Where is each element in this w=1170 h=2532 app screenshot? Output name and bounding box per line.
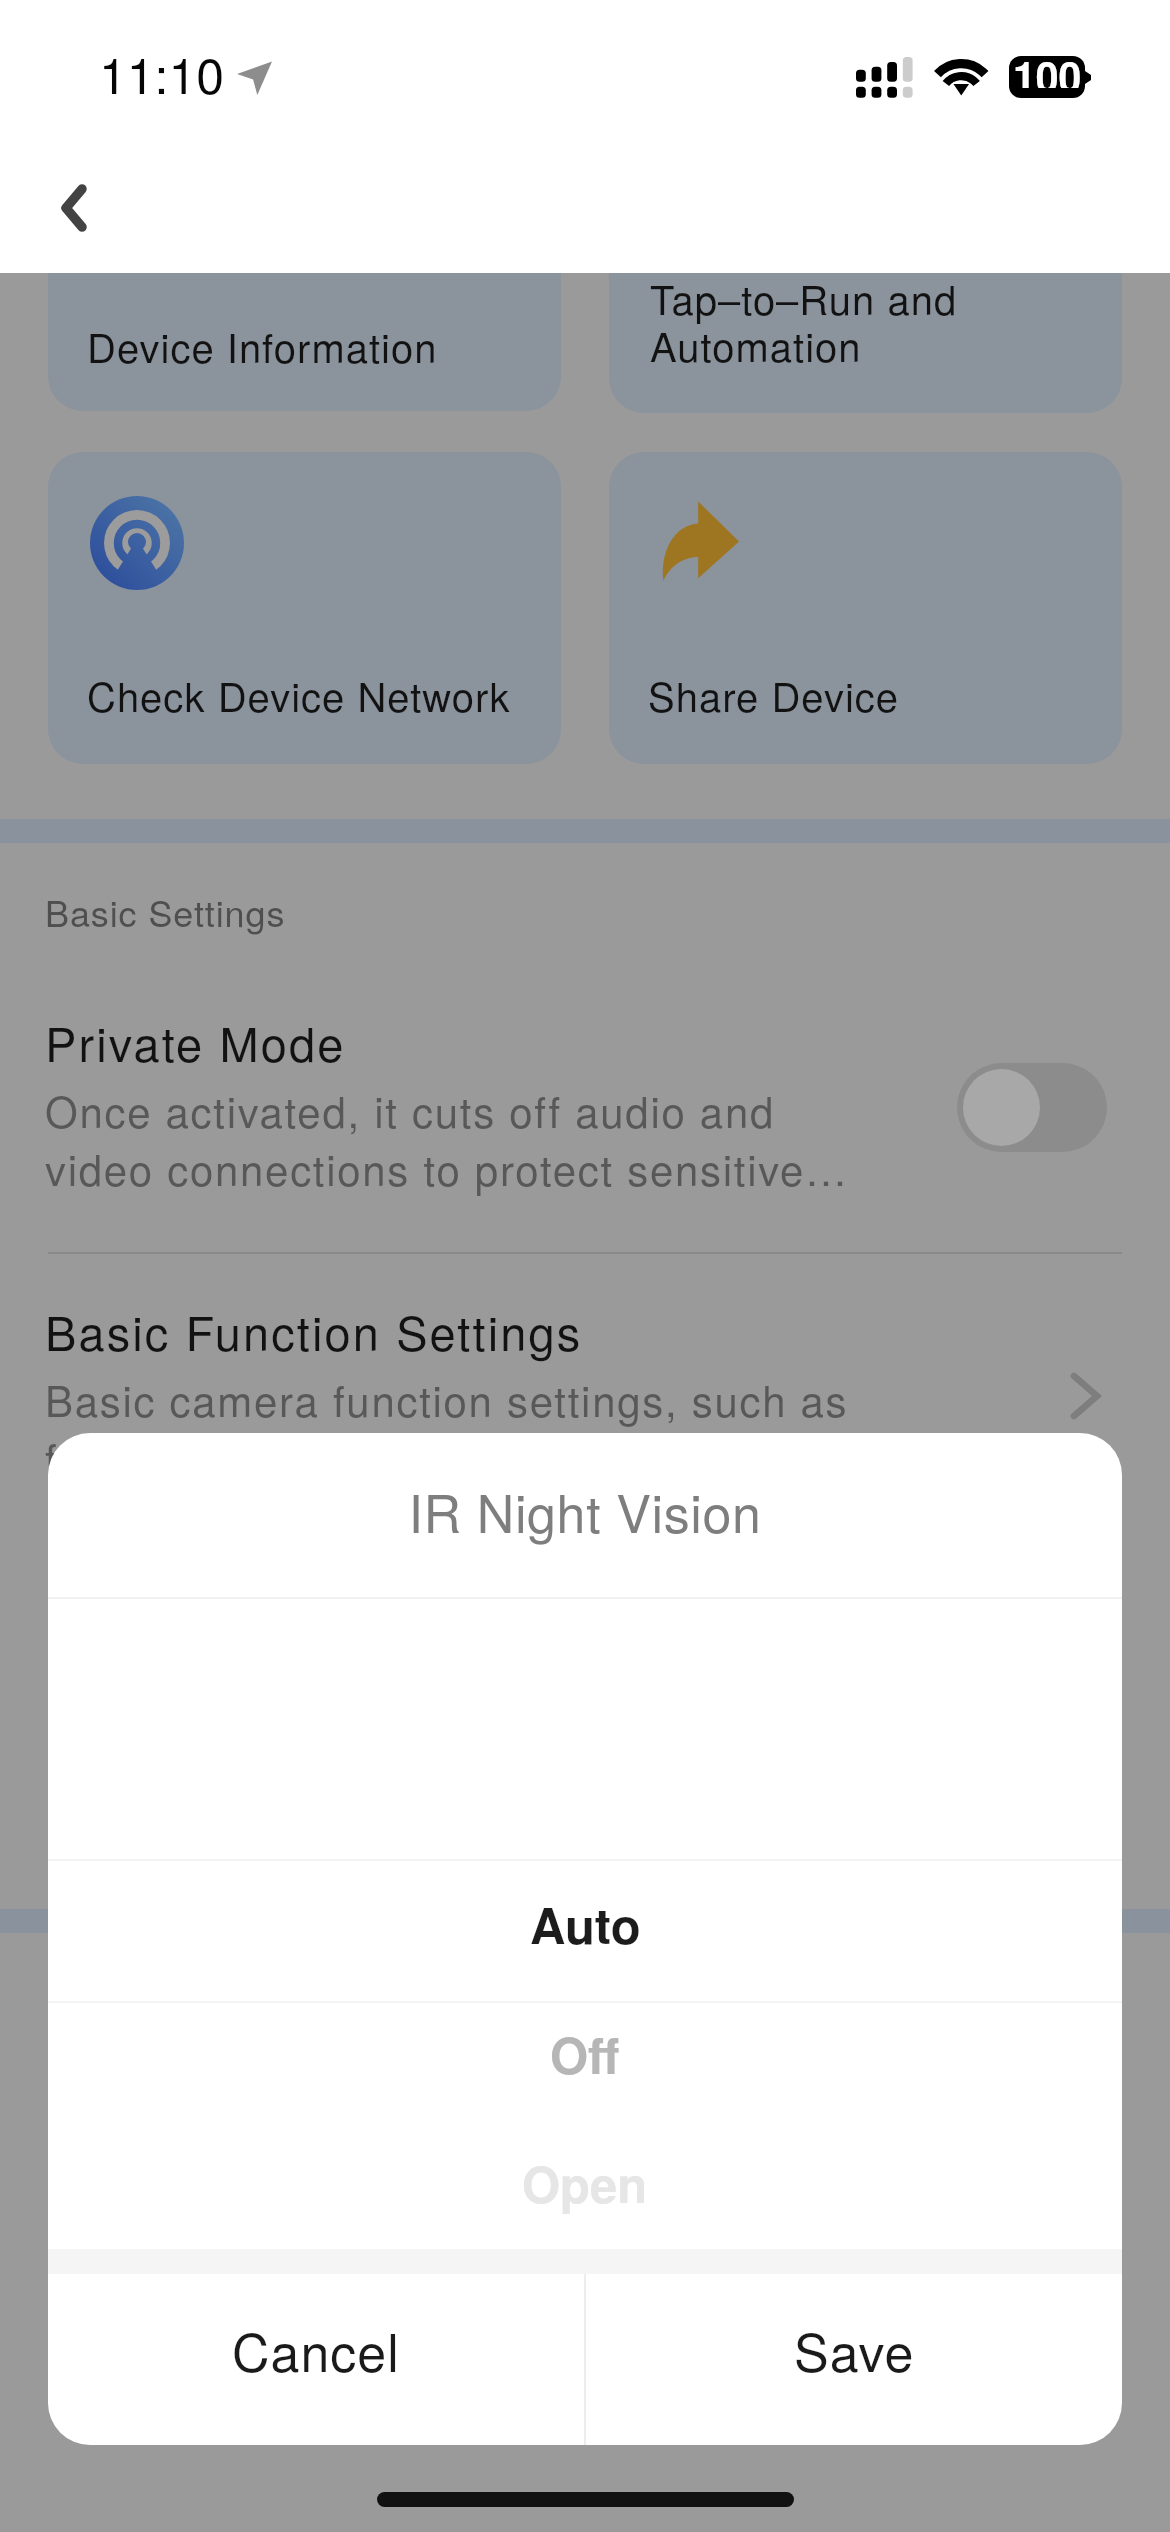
button[interactable]: Tap–to–Run and Automation xyxy=(609,228,1122,413)
button[interactable]: Share Device xyxy=(609,452,1122,764)
staticText: Open xyxy=(522,2148,648,2218)
staticText: Device Information xyxy=(87,317,438,374)
staticText: Share Device xyxy=(648,666,900,723)
button[interactable]: Back xyxy=(16,153,126,263)
staticText: Save xyxy=(794,2312,915,2386)
staticText: 11:10 xyxy=(99,37,225,109)
staticText: Tap–to–Run and Automation xyxy=(650,269,958,374)
button[interactable]: Auto xyxy=(48,1860,1122,1990)
staticText: Check Device Network xyxy=(87,666,511,723)
button[interactable]: Device Information xyxy=(48,228,561,411)
staticText: Once activated, it cuts off audio and vi… xyxy=(45,1080,849,1198)
button[interactable]: Private Mode toggle xyxy=(957,1063,1107,1152)
staticText: Basic Function Settings xyxy=(45,1297,583,1364)
staticText: IR Night Vision xyxy=(48,1473,1122,1547)
button[interactable]: Check Device Network xyxy=(48,452,561,764)
button[interactable]: Off xyxy=(48,1990,1122,2120)
staticText: Basic camera function settings, such as … xyxy=(45,1369,849,1487)
staticText: Cancel xyxy=(232,2312,400,2386)
staticText: Private Mode xyxy=(45,1008,346,1075)
staticText: Auto xyxy=(530,1889,641,1959)
staticText: 100 xyxy=(1013,56,1082,88)
staticText: Basic Settings xyxy=(45,886,286,938)
staticText: Off xyxy=(550,2019,620,2089)
button[interactable]: Cancel xyxy=(48,2274,584,2445)
button[interactable]: Save xyxy=(586,2274,1122,2445)
